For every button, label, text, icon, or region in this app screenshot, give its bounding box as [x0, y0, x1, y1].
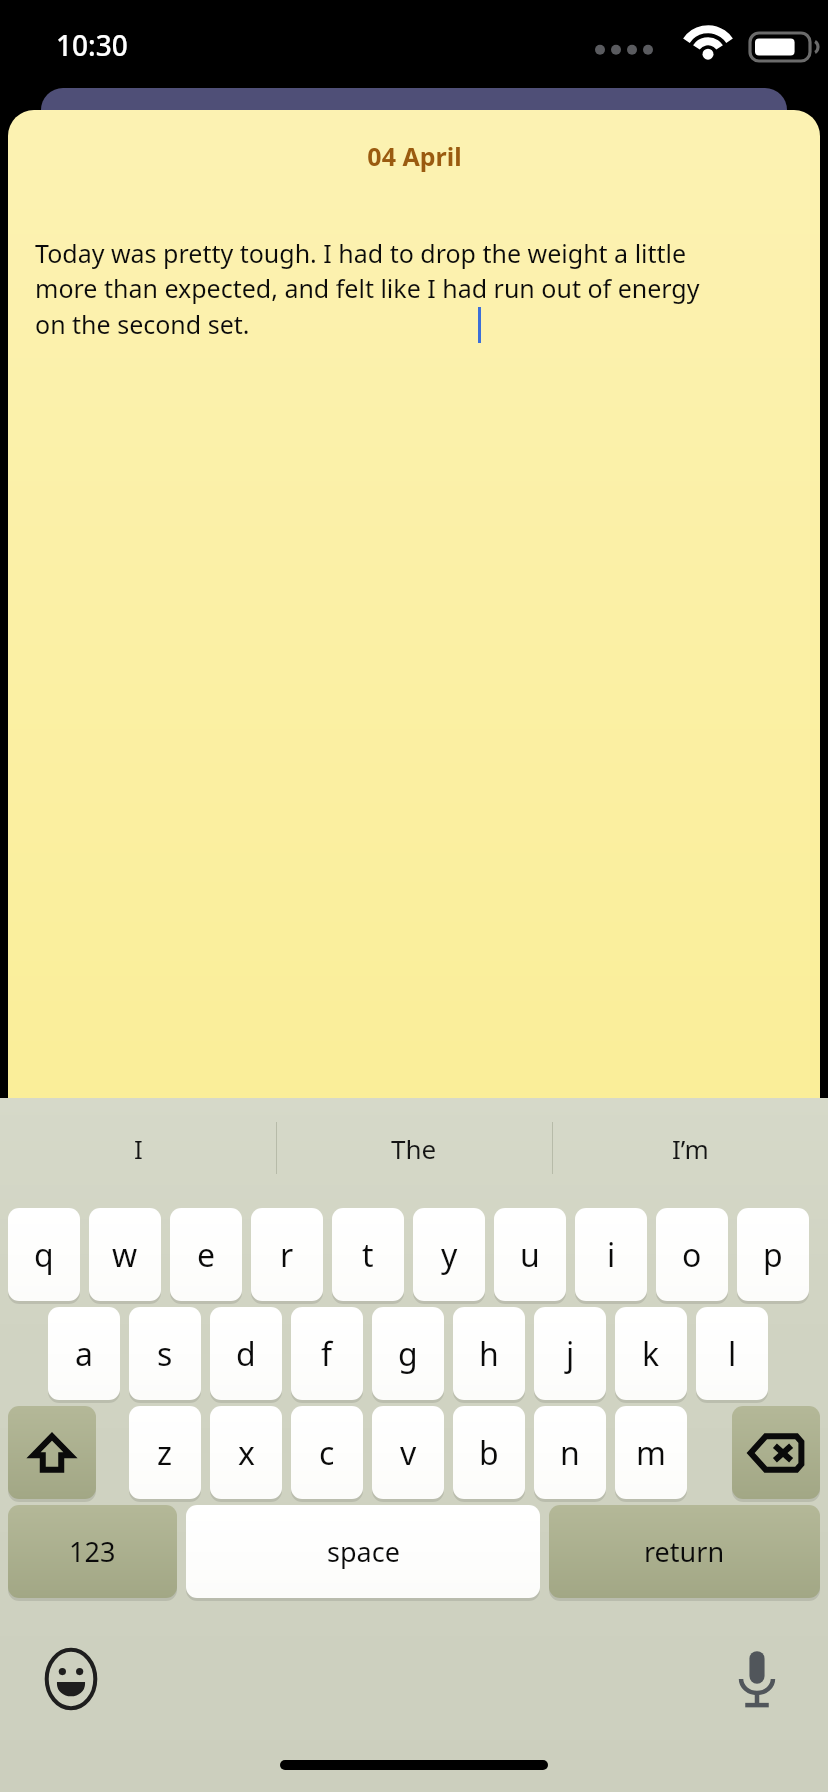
staticText: space: [327, 1533, 400, 1570]
staticText: n: [560, 1431, 580, 1475]
button[interactable]: 123: [8, 1505, 177, 1598]
button[interactable]: The: [276, 1098, 552, 1198]
staticText: k: [642, 1332, 660, 1376]
staticText: z: [157, 1431, 173, 1475]
button[interactable]: 04 April: [8, 110, 820, 1100]
button[interactable]: space: [186, 1505, 540, 1598]
button[interactable]: g: [372, 1307, 444, 1400]
button[interactable]: a: [48, 1307, 120, 1400]
button[interactable]: x: [210, 1406, 282, 1499]
button[interactable]: j: [534, 1307, 606, 1400]
staticText: e: [197, 1233, 216, 1277]
button[interactable]: I’m: [552, 1098, 828, 1198]
staticText: 123: [69, 1533, 116, 1570]
staticText: p: [763, 1233, 783, 1277]
button[interactable]: l: [696, 1307, 768, 1400]
staticText: I’m: [672, 1131, 709, 1166]
button[interactable]: n: [534, 1406, 606, 1499]
button[interactable]: m: [615, 1406, 687, 1499]
staticText: m: [636, 1431, 666, 1475]
staticText: y: [441, 1233, 458, 1277]
staticText: l: [728, 1332, 737, 1376]
button[interactable]: q: [8, 1208, 80, 1301]
button[interactable]: o: [656, 1208, 728, 1301]
button[interactable]: Shift: [8, 1406, 96, 1499]
button[interactable]: e: [170, 1208, 242, 1301]
staticText: Today was pretty tough. I had to drop th…: [35, 236, 715, 342]
button[interactable]: p: [737, 1208, 809, 1301]
button[interactable]: h: [453, 1307, 525, 1400]
staticText: v: [400, 1431, 417, 1475]
staticText: The: [391, 1131, 437, 1166]
button[interactable]: Voice input: [722, 1644, 792, 1714]
button[interactable]: t: [332, 1208, 404, 1301]
staticText: a: [75, 1332, 93, 1376]
button[interactable]: r: [251, 1208, 323, 1301]
staticText: u: [520, 1233, 540, 1277]
button[interactable]: Emoji keyboard: [36, 1644, 106, 1714]
staticText: b: [479, 1431, 499, 1475]
button[interactable]: v: [372, 1406, 444, 1499]
staticText: o: [682, 1233, 702, 1277]
staticText: g: [398, 1332, 418, 1376]
staticText: 04 April: [367, 139, 462, 173]
button[interactable]: w: [89, 1208, 161, 1301]
staticText: s: [157, 1332, 173, 1376]
button[interactable]: b: [453, 1406, 525, 1499]
staticText: f: [321, 1332, 333, 1376]
staticText: c: [319, 1431, 335, 1475]
staticText: I: [134, 1131, 143, 1166]
button[interactable]: return: [549, 1505, 820, 1598]
staticText: x: [238, 1431, 255, 1475]
button[interactable]: f: [291, 1307, 363, 1400]
button[interactable]: i: [575, 1208, 647, 1301]
button[interactable]: c: [291, 1406, 363, 1499]
button[interactable]: u: [494, 1208, 566, 1301]
staticText: q: [34, 1233, 54, 1277]
button[interactable]: y: [413, 1208, 485, 1301]
staticText: i: [607, 1233, 616, 1277]
staticText: d: [236, 1332, 256, 1376]
staticText: j: [566, 1332, 575, 1376]
button[interactable]: s: [129, 1307, 201, 1400]
staticText: w: [112, 1233, 138, 1277]
staticText: r: [280, 1233, 294, 1277]
button[interactable]: d: [210, 1307, 282, 1400]
staticText: return: [644, 1533, 725, 1570]
button[interactable]: Backspace: [732, 1406, 820, 1499]
staticText: h: [479, 1332, 499, 1376]
button[interactable]: z: [129, 1406, 201, 1499]
button[interactable]: k: [615, 1307, 687, 1400]
staticText: t: [362, 1233, 374, 1277]
button[interactable]: I: [0, 1098, 276, 1198]
staticText: 10:30: [56, 26, 128, 64]
